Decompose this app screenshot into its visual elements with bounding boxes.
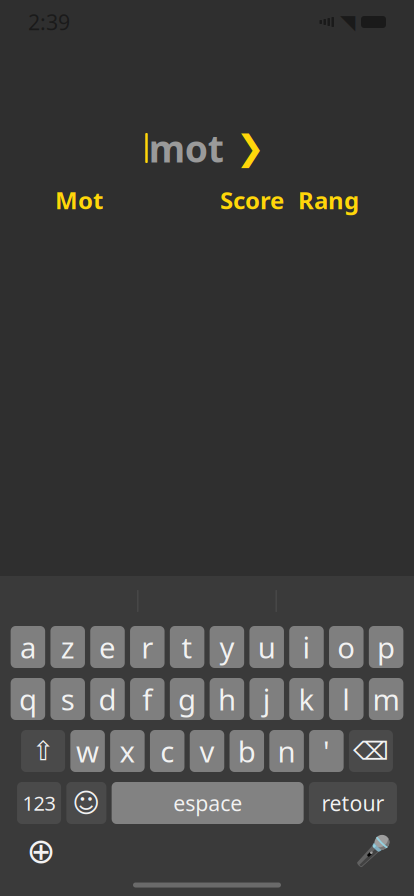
button[interactable]: r: [130, 626, 165, 668]
staticText: q: [19, 679, 37, 718]
button[interactable]: s: [50, 678, 85, 720]
staticText: c: [160, 731, 174, 770]
staticText: ⊕: [26, 831, 55, 871]
staticText: 123: [23, 790, 56, 816]
button[interactable]: ': [309, 730, 344, 772]
staticText: k: [298, 679, 314, 718]
button[interactable]: t: [170, 626, 204, 668]
staticText: retour: [321, 789, 384, 817]
staticText: ☺: [72, 788, 100, 818]
button[interactable]: y: [210, 626, 244, 668]
staticText: m: [373, 679, 400, 718]
staticText: g: [178, 679, 196, 718]
staticText: ⇧: [32, 736, 54, 766]
button[interactable]: Submit word: [224, 128, 269, 168]
staticText: y: [219, 627, 234, 666]
button[interactable]: Numbers: [17, 782, 61, 824]
staticText: ◥: [340, 11, 355, 33]
button[interactable]: c: [150, 730, 184, 772]
button[interactable]: b: [230, 730, 264, 772]
button[interactable]: j: [249, 678, 284, 720]
button[interactable]: p: [369, 626, 403, 668]
staticText: l: [342, 679, 350, 718]
button[interactable]: v: [190, 730, 224, 772]
button[interactable]: h: [210, 678, 244, 720]
staticText: ': [323, 731, 330, 770]
staticText: s: [61, 679, 75, 718]
staticText: p: [377, 627, 395, 666]
button[interactable]: a: [11, 626, 45, 668]
button[interactable]: Delete: [349, 730, 393, 772]
button[interactable]: Next keyboard: [19, 829, 63, 873]
staticText: v: [199, 731, 214, 770]
staticText: n: [278, 731, 296, 770]
button[interactable]: Space: [112, 782, 304, 824]
button[interactable]: l: [329, 678, 364, 720]
button[interactable]: g: [170, 678, 204, 720]
staticText: j: [263, 679, 271, 718]
staticText: x: [119, 731, 135, 770]
staticText: 2:39: [28, 8, 70, 36]
staticText: e: [99, 627, 116, 666]
button[interactable]: e: [90, 626, 125, 668]
button[interactable]: Emoji: [66, 782, 106, 824]
button[interactable]: o: [329, 626, 364, 668]
staticText: u: [258, 627, 276, 666]
button[interactable]: u: [249, 626, 284, 668]
button[interactable]: f: [130, 678, 165, 720]
button[interactable]: i: [289, 626, 324, 668]
staticText: ❯: [236, 128, 265, 168]
staticText: r: [141, 627, 153, 666]
staticText: a: [20, 627, 36, 666]
button[interactable]: n: [269, 730, 304, 772]
staticText: Score: [220, 184, 284, 216]
staticText: z: [61, 627, 75, 666]
staticText: b: [238, 731, 256, 770]
button[interactable]: Dictation: [351, 829, 395, 873]
button[interactable]: x: [110, 730, 145, 772]
staticText: mot: [149, 123, 224, 173]
staticText: ⌫: [353, 737, 389, 765]
staticText: i: [302, 627, 310, 666]
staticText: f: [142, 679, 152, 718]
staticText: 🎤: [354, 834, 391, 868]
button[interactable]: k: [289, 678, 324, 720]
staticText: h: [218, 679, 236, 718]
button[interactable]: w: [70, 730, 105, 772]
staticText: espace: [173, 789, 242, 817]
staticText: Rang: [298, 184, 359, 216]
button[interactable]: z: [50, 626, 85, 668]
staticText: d: [98, 679, 116, 718]
button[interactable]: q: [11, 678, 45, 720]
button[interactable]: m: [369, 678, 403, 720]
staticText: Mot: [55, 184, 103, 216]
staticText: t: [182, 627, 193, 666]
button[interactable]: Return: [309, 782, 397, 824]
staticText: o: [337, 627, 355, 666]
button[interactable]: Shift: [21, 730, 65, 772]
staticText: w: [76, 731, 99, 770]
button[interactable]: d: [90, 678, 125, 720]
